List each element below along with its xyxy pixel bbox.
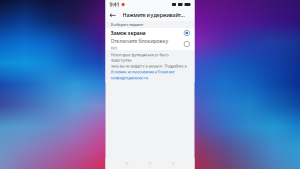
staticText: Выберите вариант xyxy=(110,22,143,27)
staticText: Условиях использования и Политике xyxy=(110,69,174,74)
staticText: Некоторые функции могут быть недоступны xyxy=(110,52,168,63)
staticText: Нажмите и удерживайте кнопку … xyxy=(122,11,186,19)
button[interactable]: Отключите блокировку xyxy=(105,38,194,50)
button[interactable]: Back xyxy=(108,10,117,19)
staticText: 9:41 xyxy=(109,1,119,8)
staticText: Нет xyxy=(110,45,117,51)
staticText: Замок экрана xyxy=(110,29,145,37)
button[interactable]: Home xyxy=(148,162,151,165)
staticText: ← xyxy=(109,10,116,20)
staticText: пока вы не войдёте в аккаунт. Подробнее … xyxy=(110,63,186,68)
staticText: Отключите блокировку xyxy=(110,37,168,44)
button[interactable]: Замок экрана xyxy=(105,28,194,38)
staticText: конфиденциальности. xyxy=(110,75,148,80)
